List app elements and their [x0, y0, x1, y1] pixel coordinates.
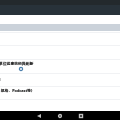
- button[interactable]: Recents: [76, 111, 86, 120]
- button[interactable]: Home: [55, 111, 65, 120]
- button[interactable]: [0, 87, 120, 100]
- button[interactable]: [0, 19, 120, 33]
- staticText: 、規格、Podcast等): [0, 88, 33, 93]
- button[interactable]: [0, 33, 120, 46]
- button[interactable]: [0, 74, 120, 87]
- button[interactable]: [0, 60, 120, 74]
- staticText: 單位從事技術與創新: [0, 61, 34, 66]
- button[interactable]: [0, 46, 120, 60]
- staticText: 單位從事技術與創新: [0, 61, 34, 66]
- staticText: 、規格、Podcast等): [0, 88, 33, 93]
- button[interactable]: Back: [34, 111, 44, 120]
